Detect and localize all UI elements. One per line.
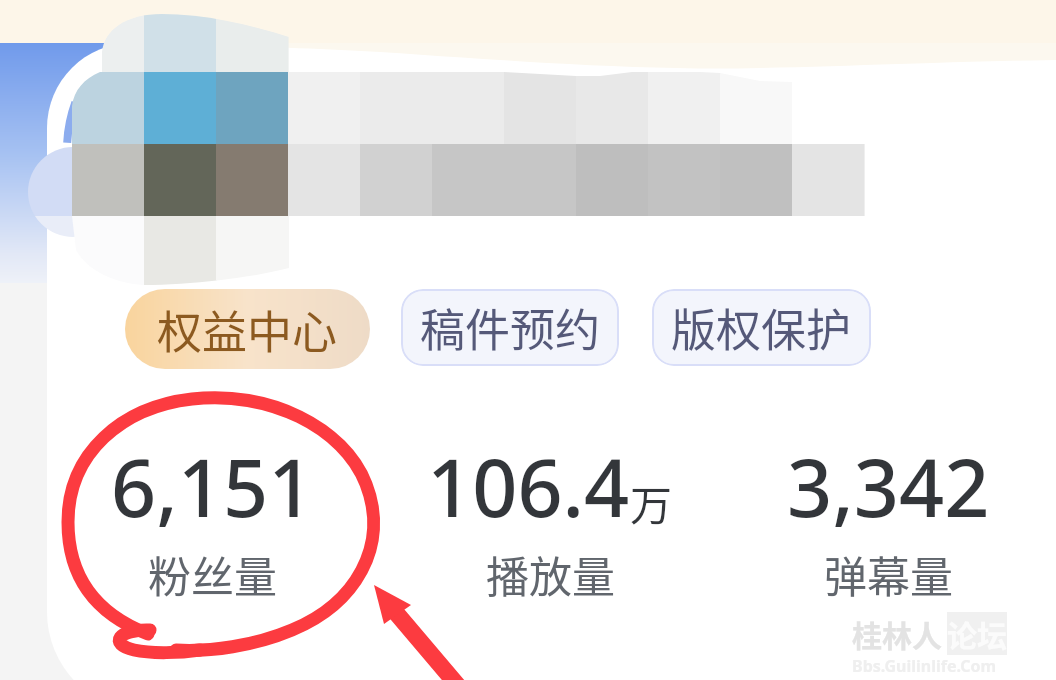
staticText: Bbs.Guilinlife.Com	[852, 655, 997, 677]
staticText: 粉丝量	[148, 543, 277, 605]
button[interactable]: 稿件预约	[401, 289, 619, 366]
staticText: 3,342	[787, 433, 990, 541]
staticText: 播放量	[486, 543, 615, 605]
button[interactable]: 版权保护	[652, 289, 871, 366]
staticText: 稿件预约	[420, 295, 601, 360]
staticText: 权益中心	[157, 297, 338, 362]
staticText: 万	[630, 472, 673, 533]
staticText: 版权保护	[671, 295, 852, 360]
button[interactable]: 权益中心	[125, 289, 370, 369]
staticText: 弹幕量	[824, 543, 953, 605]
staticText: 桂林人	[852, 612, 942, 655]
staticText: 6,151	[111, 433, 314, 541]
staticText: 106.4	[427, 433, 630, 541]
staticText: 论坛	[947, 612, 1007, 655]
